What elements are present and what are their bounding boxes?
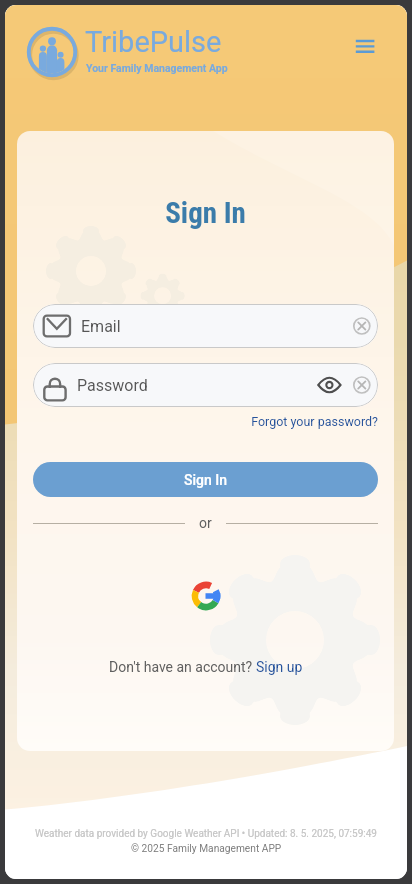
button[interactable]: Clear [348,312,376,340]
button[interactable]: Forgot your password? [33,414,378,429]
staticText: Sign In [184,472,228,488]
staticText: Your Family Management App [86,62,228,74]
button[interactable]: Show password [314,370,344,400]
staticText: Sign In [17,196,394,230]
button[interactable]: Email [33,304,378,348]
staticText: Email [81,317,121,336]
staticText: © 2025 Family Management APP [131,843,282,855]
staticText: Weather data provided by Google Weather … [35,828,377,840]
staticText: TribePulse [85,25,222,59]
button[interactable]: Sign In [33,462,378,497]
button[interactable]: Sign in with Google [188,578,224,614]
staticText: Password [77,376,148,395]
button[interactable]: Menu [342,27,388,73]
button[interactable]: Password [33,363,378,407]
staticText: Don't have an account? [109,659,256,675]
button[interactable]: Sign up [256,659,303,675]
button[interactable]: Clear [348,371,376,399]
staticText: or [199,515,212,531]
